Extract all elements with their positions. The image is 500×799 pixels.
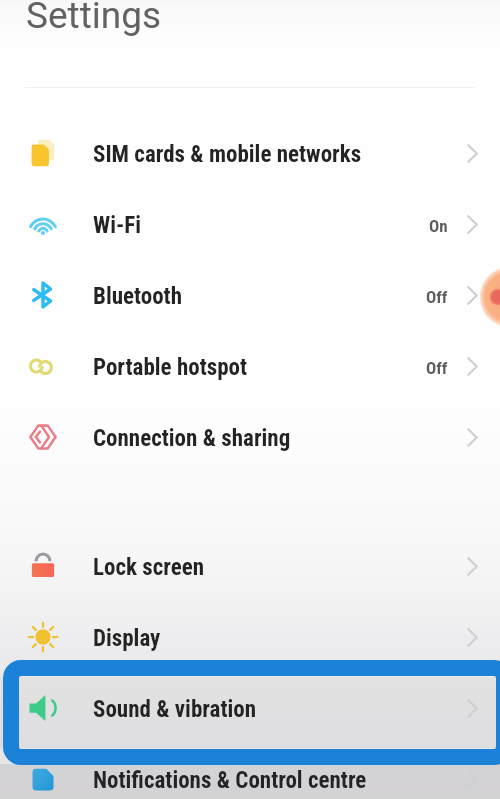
button[interactable]: Lock screen: [0, 531, 500, 602]
button[interactable]: Portable hotspot: [0, 331, 500, 402]
staticText: Lock screen: [93, 554, 205, 581]
staticText: Notifications & Control centre: [93, 767, 367, 794]
button[interactable]: Sound & vibration: [0, 673, 500, 744]
button[interactable]: Display: [0, 602, 500, 673]
staticText: Sound & vibration: [93, 696, 257, 723]
staticText: Connection & sharing: [93, 425, 291, 452]
staticText: Portable hotspot: [93, 354, 248, 381]
button[interactable]: Notifications & Control centre: [0, 744, 500, 799]
staticText: Wi-Fi: [93, 212, 142, 239]
staticText: Display: [93, 625, 161, 652]
staticText: Off: [426, 358, 448, 378]
button[interactable]: Wi-Fi: [0, 189, 500, 260]
staticText: SIM cards & mobile networks: [93, 141, 362, 168]
staticText: Bluetooth: [93, 283, 182, 310]
button[interactable]: Bluetooth: [0, 260, 500, 331]
button[interactable]: Connection & sharing: [0, 402, 500, 473]
staticText: Settings: [26, 0, 162, 37]
staticText: On: [429, 216, 448, 236]
staticText: Off: [426, 287, 448, 307]
button[interactable]: SIM cards & mobile networks: [0, 118, 500, 189]
